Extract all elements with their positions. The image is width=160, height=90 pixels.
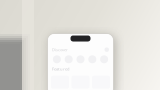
staticText: Featured — [52, 66, 70, 72]
button[interactable]: Profile — [104, 47, 109, 52]
button[interactable]: Category — [63, 55, 75, 63]
button[interactable]: Category — [51, 55, 63, 63]
staticText: Discover — [52, 47, 68, 52]
button[interactable]: Category — [75, 55, 86, 63]
button[interactable]: Category — [86, 55, 98, 63]
button[interactable]: Category — [98, 55, 110, 63]
